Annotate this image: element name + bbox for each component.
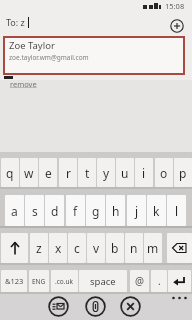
button[interactable]: o: [155, 158, 173, 187]
button[interactable]: [85, 296, 106, 317]
staticText: l: [175, 203, 179, 219]
staticText: To: z: [6, 16, 25, 28]
button[interactable]: [170, 19, 184, 33]
button[interactable]: w: [20, 158, 38, 187]
button[interactable]: [120, 296, 141, 317]
staticText: v: [93, 240, 100, 256]
staticText: n: [130, 240, 138, 256]
staticText: b: [111, 240, 119, 256]
button[interactable]: l: [167, 195, 186, 226]
button[interactable]: Zoe Taylor: [3, 36, 185, 75]
staticText: i: [142, 165, 146, 181]
button[interactable]: c: [68, 233, 86, 263]
staticText: j: [135, 203, 139, 219]
staticText: g: [92, 203, 100, 219]
button[interactable]: [48, 296, 69, 317]
button[interactable]: y: [97, 158, 115, 187]
button[interactable]: [1, 233, 28, 263]
staticText: q: [6, 165, 14, 181]
staticText: k: [153, 203, 160, 219]
button[interactable]: d: [45, 195, 64, 226]
button[interactable]: ENG: [29, 270, 49, 292]
staticText: e: [45, 165, 52, 181]
staticText: a: [11, 203, 18, 219]
staticText: o: [160, 165, 168, 181]
button[interactable]: h: [106, 195, 125, 226]
staticText: space: [90, 275, 116, 288]
button[interactable]: .co.uk: [51, 270, 78, 292]
staticText: remove: [10, 79, 37, 89]
staticText: zoe.taylor.wm@gmail.com: [9, 53, 89, 62]
button[interactable]: [168, 270, 191, 292]
staticText: r: [66, 165, 71, 181]
button[interactable]: n: [125, 233, 143, 263]
button[interactable]: a: [5, 195, 24, 226]
staticText: p: [179, 165, 187, 181]
button[interactable]: remove: [10, 79, 37, 89]
staticText: x: [55, 240, 62, 256]
staticText: s: [32, 203, 38, 219]
button[interactable]: m: [144, 233, 162, 263]
button[interactable]: p: [174, 158, 192, 187]
staticText: f: [73, 203, 78, 219]
button[interactable]: k: [147, 195, 166, 226]
staticText: m: [147, 240, 159, 256]
button[interactable]: j: [127, 195, 146, 226]
staticText: w: [24, 165, 34, 181]
button[interactable]: [167, 233, 192, 263]
button[interactable]: v: [87, 233, 105, 263]
staticText: u: [121, 165, 129, 181]
button[interactable]: q: [1, 158, 19, 187]
staticText: z: [36, 240, 42, 256]
staticText: ENG: [32, 277, 46, 286]
button[interactable]: &123: [1, 270, 27, 292]
staticText: d: [51, 203, 59, 219]
button[interactable]: @: [130, 270, 149, 292]
button[interactable]: s: [25, 195, 44, 226]
button[interactable]: .: [151, 270, 167, 292]
button[interactable]: e: [39, 158, 57, 187]
button[interactable]: b: [106, 233, 124, 263]
button[interactable]: x: [49, 233, 67, 263]
button[interactable]: u: [116, 158, 134, 187]
button[interactable]: t: [78, 158, 96, 187]
staticText: h: [112, 203, 120, 219]
button[interactable]: z: [30, 233, 48, 263]
button[interactable]: f: [66, 195, 85, 226]
staticText: .: [158, 274, 161, 288]
button[interactable]: r: [59, 158, 77, 187]
staticText: 15:08: [165, 1, 185, 11]
staticText: .co.uk: [55, 277, 74, 286]
staticText: y: [103, 165, 110, 181]
staticText: @: [135, 274, 144, 288]
staticText: &123: [5, 276, 24, 286]
staticText: Zoe Taylor: [9, 39, 55, 52]
button[interactable]: i: [135, 158, 153, 187]
staticText: c: [74, 240, 80, 256]
button[interactable]: g: [86, 195, 105, 226]
staticText: t: [85, 165, 90, 181]
button[interactable]: space: [79, 270, 127, 292]
